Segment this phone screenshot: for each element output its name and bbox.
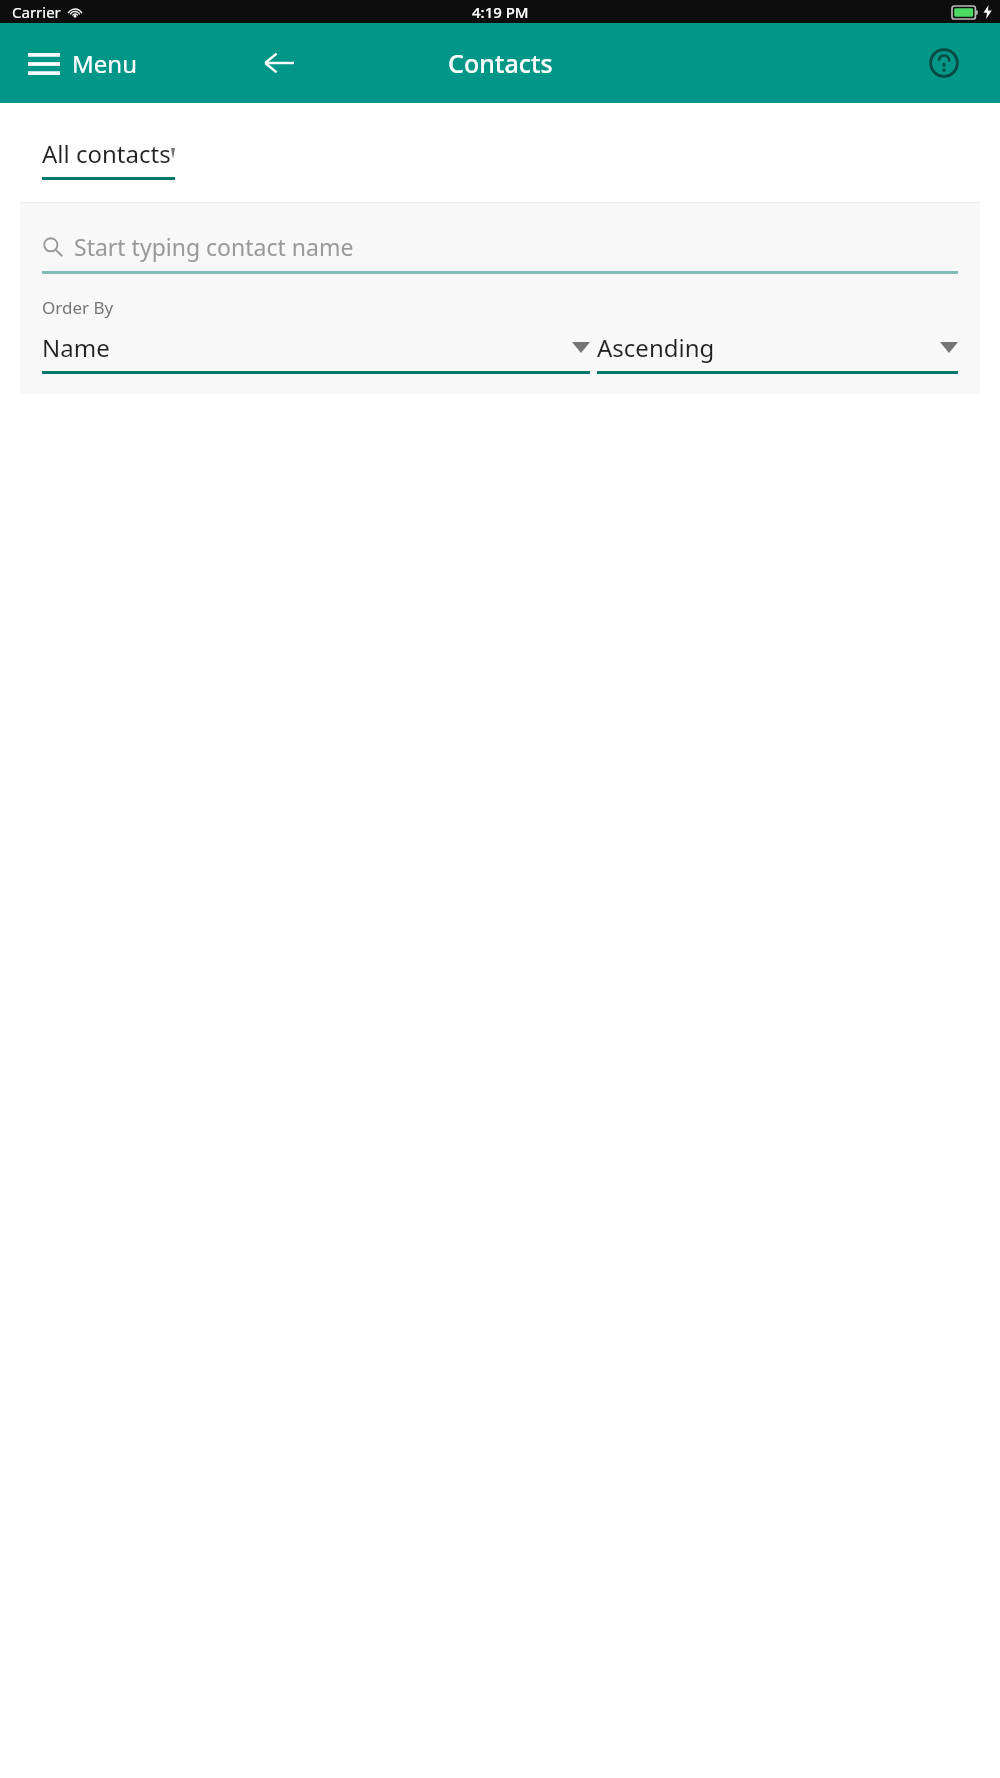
button[interactable]: Back [253, 37, 305, 89]
button[interactable]: Help [920, 39, 968, 87]
staticText: Menu [72, 47, 137, 80]
staticText: Name [42, 331, 110, 364]
staticText: Order By [42, 296, 114, 319]
button[interactable]: Menu [22, 39, 143, 88]
button[interactable]: Ascending [597, 331, 958, 374]
button[interactable]: Name [42, 331, 590, 374]
staticText: Start typing contact name [74, 231, 354, 262]
staticText: Ascending [597, 331, 715, 364]
staticText: 4:19 PM [472, 2, 529, 22]
staticText: Contacts [448, 46, 553, 80]
button[interactable]: All contacts [42, 137, 175, 180]
staticText: Carrier [12, 2, 61, 22]
button[interactable]: Start typing contact name [42, 231, 958, 274]
staticText: All contacts [42, 137, 171, 170]
